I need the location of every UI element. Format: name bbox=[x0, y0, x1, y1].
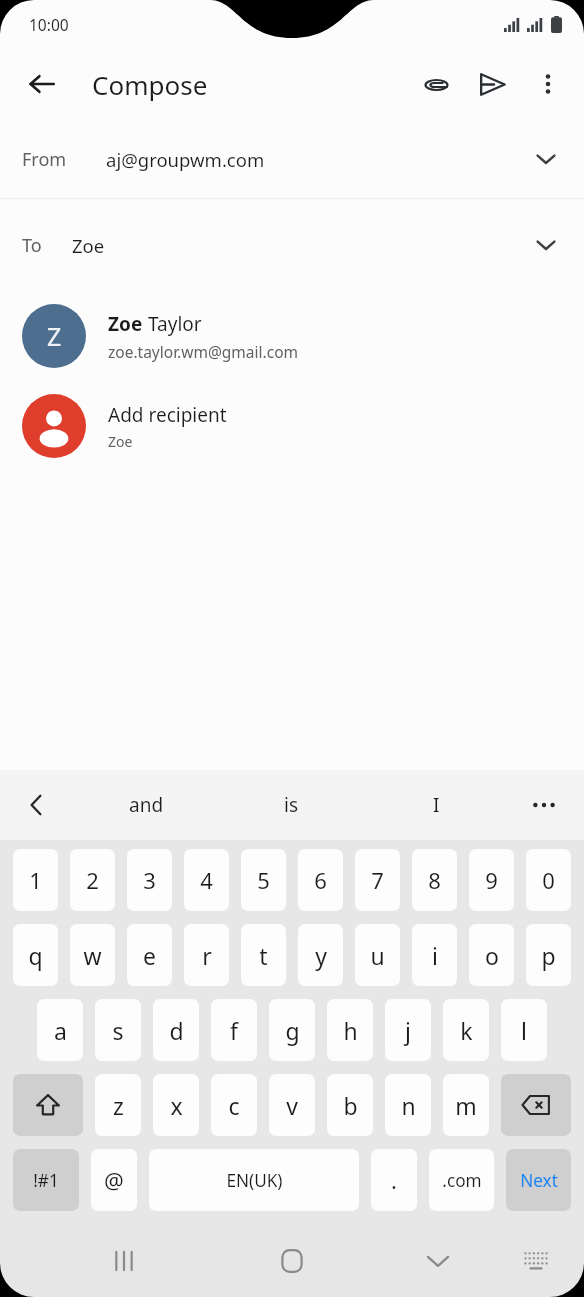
button[interactable]: 2 bbox=[70, 849, 115, 911]
button[interactable]: Backspace bbox=[501, 1074, 571, 1136]
button[interactable]: !#1 bbox=[13, 1149, 79, 1211]
button[interactable]: g bbox=[269, 999, 315, 1061]
button[interactable]: Change keyboard bbox=[510, 1235, 562, 1287]
button[interactable]: .com bbox=[429, 1149, 494, 1211]
button[interactable]: Next bbox=[506, 1149, 571, 1211]
staticText: u bbox=[370, 940, 385, 971]
button[interactable]: 8 bbox=[412, 849, 457, 911]
button[interactable]: 9 bbox=[469, 849, 514, 911]
button[interactable]: Add recipient bbox=[0, 381, 584, 471]
staticText: .com bbox=[442, 1169, 482, 1192]
button[interactable]: To bbox=[0, 199, 584, 291]
button[interactable]: Shift bbox=[13, 1074, 83, 1136]
staticText: !#1 bbox=[33, 1169, 59, 1192]
staticText: 8 bbox=[428, 865, 441, 895]
button[interactable]: and bbox=[96, 780, 196, 830]
button[interactable]: 7 bbox=[355, 849, 400, 911]
button[interactable]: Z bbox=[0, 291, 584, 381]
button[interactable]: n bbox=[385, 1074, 431, 1136]
button[interactable]: I bbox=[386, 780, 486, 830]
staticText: Zoe bbox=[108, 432, 133, 451]
staticText: Z bbox=[47, 319, 62, 353]
staticText: k bbox=[460, 1015, 473, 1046]
button[interactable]: e bbox=[127, 924, 172, 986]
button[interactable]: Attach bbox=[408, 56, 464, 112]
button[interactable]: a bbox=[37, 999, 83, 1061]
button[interactable]: Previous suggestions bbox=[14, 783, 58, 827]
staticText: r bbox=[202, 940, 212, 971]
button[interactable]: Back bbox=[14, 56, 70, 112]
button[interactable]: @ bbox=[91, 1149, 137, 1211]
button[interactable]: y bbox=[298, 924, 343, 986]
staticText: e bbox=[143, 940, 156, 971]
button[interactable]: k bbox=[443, 999, 489, 1061]
staticText: v bbox=[286, 1090, 298, 1121]
staticText: g bbox=[285, 1015, 300, 1046]
button[interactable]: l bbox=[501, 999, 547, 1061]
button[interactable]: More options bbox=[520, 56, 576, 112]
staticText: Add recipient bbox=[108, 402, 227, 428]
button[interactable]: t bbox=[241, 924, 286, 986]
staticText: y bbox=[315, 940, 327, 971]
button[interactable]: x bbox=[153, 1074, 199, 1136]
button[interactable]: b bbox=[327, 1074, 373, 1136]
staticText: f bbox=[230, 1015, 238, 1046]
button[interactable]: f bbox=[211, 999, 257, 1061]
staticText: d bbox=[169, 1015, 184, 1046]
button[interactable]: d bbox=[153, 999, 199, 1061]
button[interactable]: From bbox=[0, 120, 584, 198]
button[interactable]: Recents bbox=[98, 1235, 150, 1287]
button[interactable]: j bbox=[385, 999, 431, 1061]
staticText: 4 bbox=[200, 865, 213, 895]
button[interactable]: c bbox=[211, 1074, 257, 1136]
button[interactable]: 3 bbox=[127, 849, 172, 911]
button[interactable]: More suggestions bbox=[522, 783, 566, 827]
button[interactable]: 5 bbox=[241, 849, 286, 911]
staticText: Next bbox=[520, 1169, 558, 1192]
staticText: m bbox=[455, 1090, 477, 1121]
other: Expand to bbox=[524, 223, 568, 267]
staticText: Zoe bbox=[72, 233, 105, 258]
staticText: and bbox=[129, 792, 164, 818]
button[interactable]: r bbox=[184, 924, 229, 986]
staticText: w bbox=[83, 940, 102, 971]
staticText: From bbox=[22, 147, 67, 172]
button[interactable]: v bbox=[269, 1074, 315, 1136]
staticText: x bbox=[170, 1090, 183, 1121]
staticText: c bbox=[228, 1090, 240, 1121]
button[interactable]: Home bbox=[266, 1235, 318, 1287]
button[interactable]: Send bbox=[464, 56, 520, 112]
staticText: To bbox=[22, 233, 42, 258]
staticText: 10:00 bbox=[29, 14, 69, 35]
staticText: 6 bbox=[314, 865, 327, 895]
button[interactable]: o bbox=[469, 924, 514, 986]
button[interactable]: h bbox=[327, 999, 373, 1061]
button[interactable]: z bbox=[95, 1074, 141, 1136]
staticText: EN(UK) bbox=[226, 1169, 283, 1192]
staticText: is bbox=[284, 792, 299, 818]
staticText: 1 bbox=[29, 865, 42, 895]
button[interactable]: s bbox=[95, 999, 141, 1061]
button[interactable]: 6 bbox=[298, 849, 343, 911]
button[interactable]: is bbox=[241, 780, 341, 830]
staticText: 2 bbox=[86, 865, 99, 895]
button[interactable]: m bbox=[443, 1074, 489, 1136]
button[interactable]: u bbox=[355, 924, 400, 986]
button[interactable]: 0 bbox=[526, 849, 571, 911]
staticText: zoe.taylor.wm@gmail.com bbox=[108, 341, 298, 362]
button[interactable]: EN(UK) bbox=[149, 1149, 359, 1211]
button[interactable]: i bbox=[412, 924, 457, 986]
button[interactable]: . bbox=[371, 1149, 417, 1211]
button[interactable]: w bbox=[70, 924, 115, 986]
staticText: Compose bbox=[92, 67, 208, 102]
button[interactable]: 4 bbox=[184, 849, 229, 911]
button[interactable]: p bbox=[526, 924, 571, 986]
staticText: aj@groupwm.com bbox=[106, 147, 265, 172]
button[interactable]: q bbox=[13, 924, 58, 986]
staticText: h bbox=[343, 1015, 358, 1046]
button[interactable]: Hide keyboard bbox=[412, 1235, 464, 1287]
staticText: Taylor bbox=[148, 311, 202, 337]
staticText: 5 bbox=[257, 865, 270, 895]
staticText: s bbox=[112, 1015, 124, 1046]
button[interactable]: 1 bbox=[13, 849, 58, 911]
